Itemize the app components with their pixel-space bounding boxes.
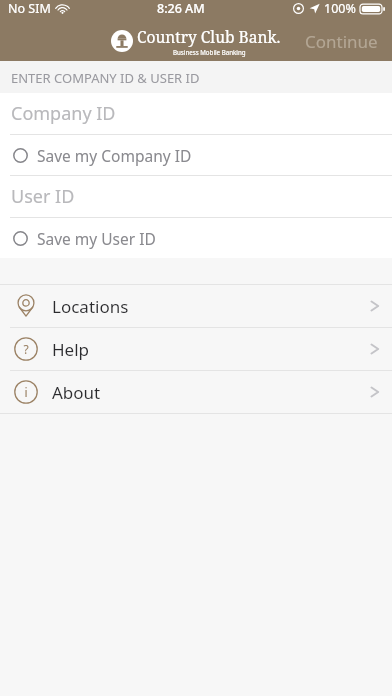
button[interactable]: Continue (291, 22, 392, 61)
button[interactable]: Save my Company ID (0, 135, 392, 175)
staticText: Save my Company ID (37, 145, 192, 166)
staticText: ? (23, 341, 29, 357)
staticText: Save my User ID (37, 228, 156, 249)
staticText: ENTER COMPANY ID & USER ID (11, 69, 200, 87)
button[interactable]: Company ID (0, 93, 392, 134)
staticText: Locations (52, 295, 129, 318)
staticText: 100% (324, 0, 356, 17)
staticText: Help (52, 338, 90, 361)
other: Locations (14, 294, 38, 318)
staticText: User ID (11, 184, 75, 209)
button[interactable]: Save my User ID (0, 218, 392, 258)
staticText: Business Mobile Banking (173, 48, 246, 56)
staticText: About (52, 381, 101, 404)
staticText: Continue (305, 30, 378, 53)
button[interactable]: User ID (0, 176, 392, 217)
button[interactable]: Locations (0, 285, 392, 327)
button[interactable]: i (0, 371, 392, 413)
staticText: Company ID (11, 101, 116, 126)
staticText: Country Club Bank. (137, 26, 281, 47)
staticText: 8:26 AM (157, 0, 205, 17)
staticText: i (24, 384, 28, 400)
button[interactable]: ? (0, 328, 392, 370)
staticText: No SIM (8, 0, 51, 17)
